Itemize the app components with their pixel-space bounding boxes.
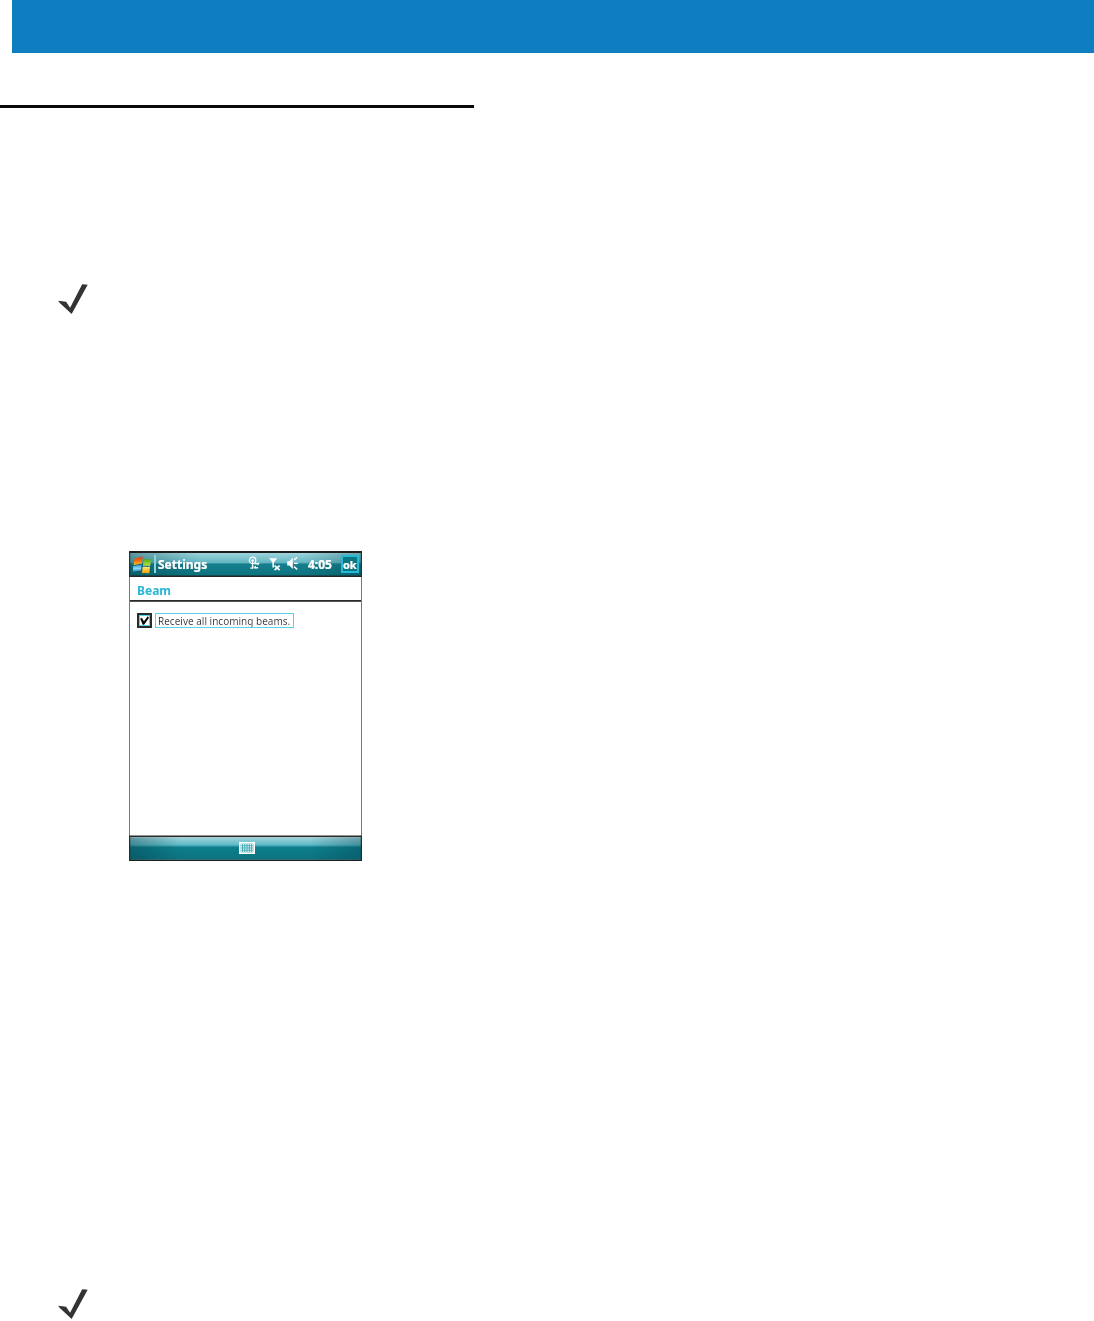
button[interactable]: Keyboard [239,842,255,854]
button[interactable]: Receive all incoming beams. [137,613,294,628]
staticText: Receive all incoming beams. [158,614,291,627]
staticText: Beam [137,582,172,598]
staticText: ok [343,557,357,571]
button[interactable]: OK [343,557,357,571]
staticText: Settings [158,556,208,572]
staticText: 4:05 [308,556,332,572]
